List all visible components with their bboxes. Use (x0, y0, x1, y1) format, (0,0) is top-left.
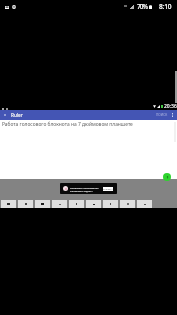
button[interactable]: Keyboard key (86, 200, 101, 208)
staticText: Разрешить приложению Voice (70, 186, 102, 189)
staticText: ПОИСК (156, 113, 168, 117)
button[interactable]: РАЗРЕШИТЬ (103, 187, 113, 191)
button[interactable]: Keyboard key (69, 200, 84, 208)
staticText: РАЗРЕШИТЬ (103, 188, 113, 191)
staticText: Ruler (11, 112, 23, 118)
button[interactable]: Keyboard key (18, 200, 33, 208)
staticText: 70% (137, 2, 148, 11)
staticText: записывать аудио с микрофона? (70, 189, 102, 192)
button[interactable]: Keyboard key (103, 200, 118, 208)
button[interactable]: Keyboard key (35, 200, 50, 208)
staticText: Работа голосового блокнота на 7 дюймовом… (2, 121, 133, 128)
button[interactable]: Keyboard key (137, 200, 152, 208)
staticText: 8:10 (159, 2, 172, 11)
button[interactable]: Keyboard key (1, 200, 16, 208)
button[interactable]: Record voice note (163, 173, 171, 181)
button[interactable]: Keyboard key (52, 200, 67, 208)
button[interactable]: Open navigation menu (0, 110, 9, 120)
button[interactable]: Keyboard key (120, 200, 135, 208)
button[interactable]: More options (170, 113, 174, 117)
staticText: 20:36 (164, 103, 177, 110)
button[interactable]: Разрешить приложению Voice (60, 183, 117, 194)
